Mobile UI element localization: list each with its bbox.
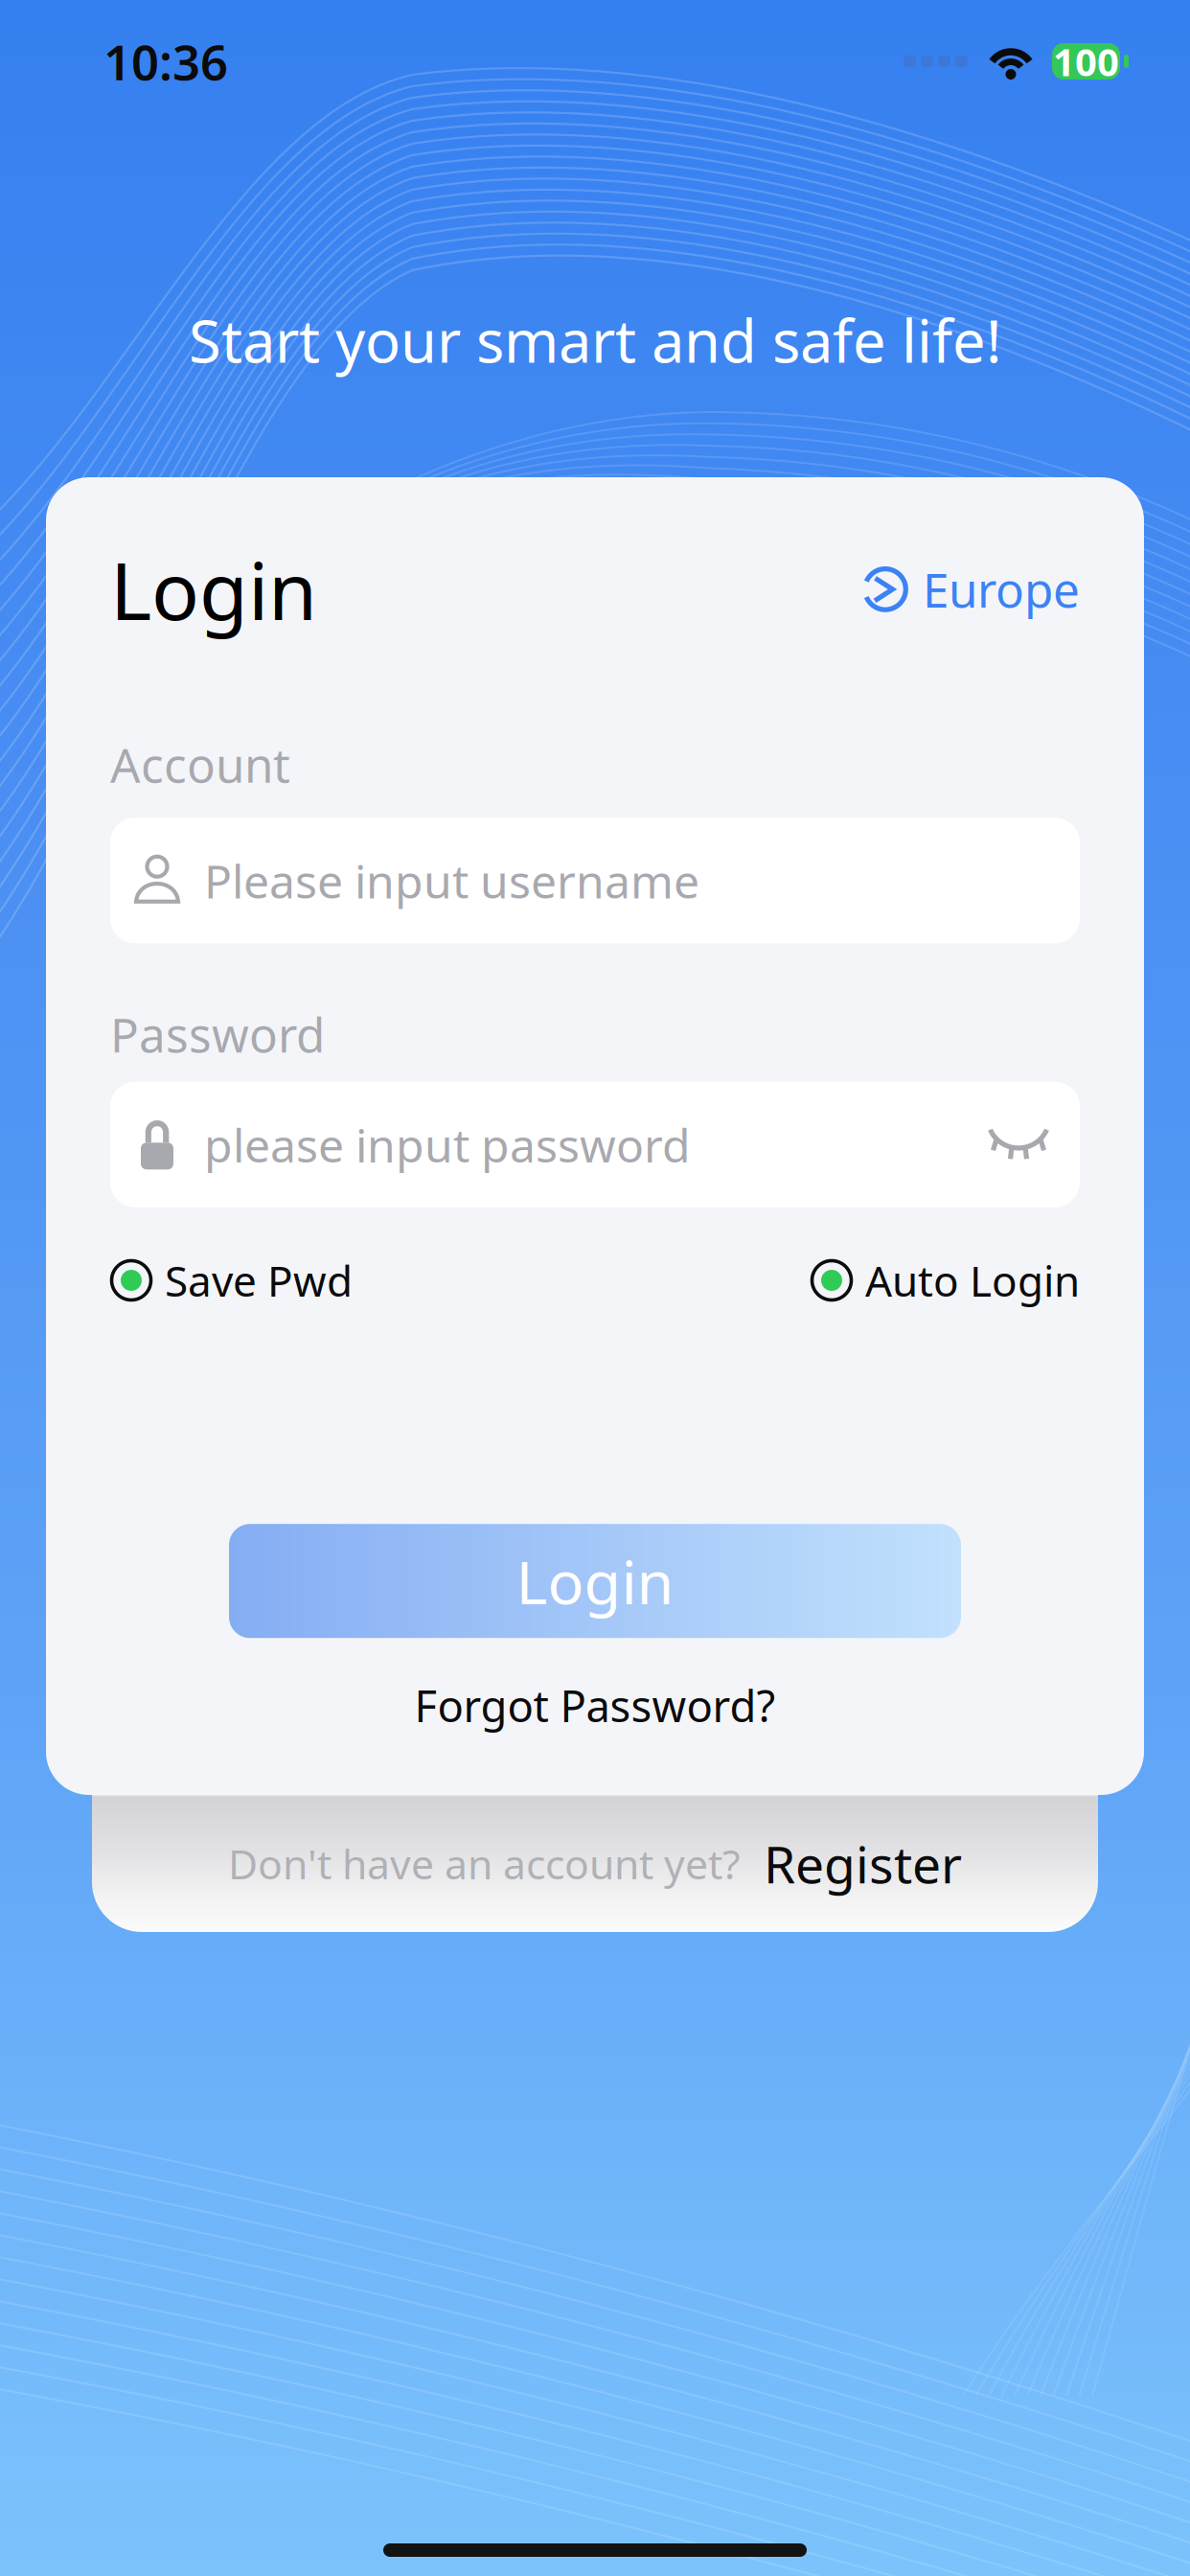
button[interactable]: Forgot Password? [110,1663,1080,1747]
staticText: Please input username [204,850,699,911]
staticText: Register [764,1830,962,1897]
staticText: Don't have an account yet? [228,1836,741,1891]
staticText: please input password [204,1114,691,1175]
staticText: Login [110,537,317,642]
staticText: Save Pwd [165,1252,353,1308]
button[interactable]: Login [229,1524,961,1638]
staticText: Auto Login [865,1252,1080,1308]
staticText: Login [516,1541,674,1621]
staticText: Password [110,1003,325,1065]
staticText: Europe [923,558,1080,621]
button[interactable]: Register [741,1812,962,1915]
button[interactable]: Auto Login [811,1243,1080,1318]
staticText: 100 [1053,36,1119,87]
staticText: Account [110,733,290,796]
button[interactable]: Save Pwd [110,1243,353,1318]
staticText: 10:36 [103,29,228,94]
button[interactable]: Show password [982,1104,1055,1185]
staticText: Forgot Password? [414,1676,776,1734]
button[interactable]: Europe [862,546,1080,632]
staticText: Start your smart and safe life! [189,301,1001,379]
